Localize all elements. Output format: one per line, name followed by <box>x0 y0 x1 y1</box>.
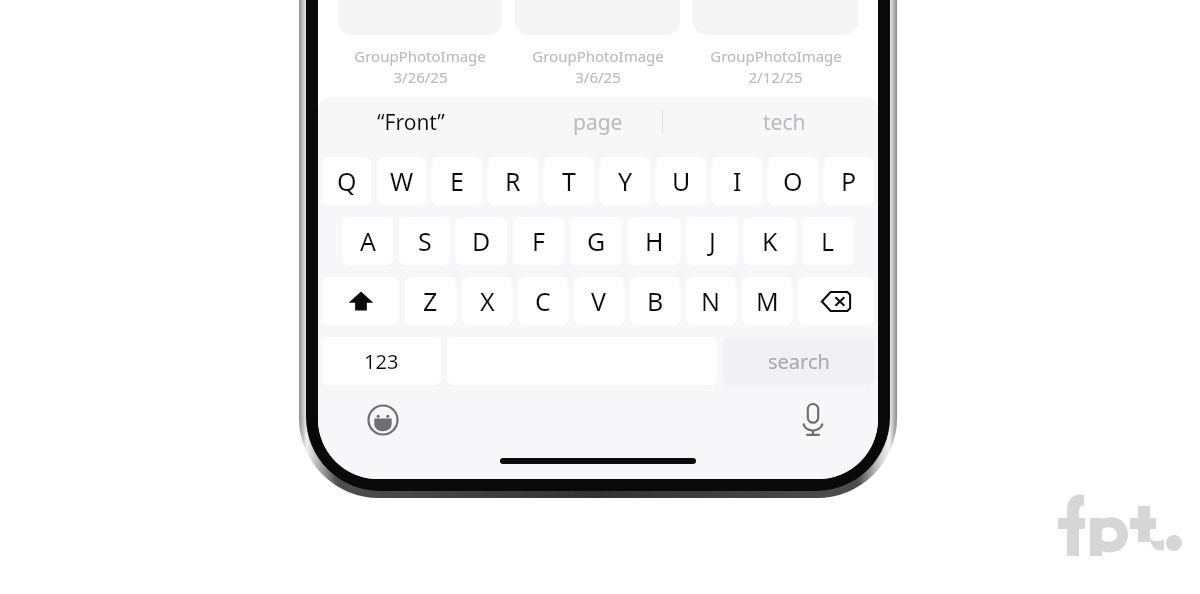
staticText: tech <box>763 108 806 137</box>
button[interactable]: A <box>342 217 393 265</box>
staticText: S <box>418 224 432 258</box>
staticText: K <box>762 224 778 258</box>
staticText: 2/12/25 <box>748 67 803 87</box>
staticText: P <box>841 164 857 198</box>
staticText: 3/26/25 <box>393 67 448 87</box>
button[interactable]: 123 <box>322 337 441 385</box>
staticText: X <box>480 284 495 318</box>
button[interactable]: U <box>656 157 706 205</box>
button[interactable]: Emoji <box>362 399 404 441</box>
button[interactable]: W <box>377 157 426 205</box>
staticText: Search <box>529 120 586 145</box>
staticText: F <box>532 224 545 258</box>
button[interactable]: T <box>544 157 594 205</box>
button[interactable] <box>515 131 680 241</box>
button[interactable] <box>693 131 858 241</box>
staticText: 123 <box>364 348 399 375</box>
staticText: E <box>450 164 464 198</box>
button[interactable] <box>338 131 502 241</box>
button[interactable]: X <box>462 277 512 325</box>
staticText: R <box>505 164 521 198</box>
staticText: GroupPhotoImage <box>354 46 486 66</box>
button[interactable]: J <box>686 217 738 265</box>
staticText: H <box>645 224 664 258</box>
button[interactable]: Search <box>471 109 725 155</box>
staticText: Q <box>337 164 357 198</box>
button[interactable]: E <box>432 157 482 205</box>
button[interactable]: Y <box>600 157 650 205</box>
staticText: page <box>573 108 623 137</box>
button[interactable]: Dictation <box>792 399 834 441</box>
staticText: Z <box>423 284 438 318</box>
staticText: GroupPhotoImage <box>532 46 664 66</box>
staticText: G <box>587 224 606 258</box>
staticText: 3/6/25 <box>575 67 621 87</box>
button[interactable]: N <box>686 277 736 325</box>
button[interactable]: Backspace <box>798 277 874 325</box>
staticText: T <box>562 164 576 198</box>
staticText: J <box>709 224 716 258</box>
button[interactable]: K <box>744 217 796 265</box>
button[interactable]: H <box>628 217 680 265</box>
button[interactable]: B <box>630 277 680 325</box>
staticText: W <box>390 164 414 198</box>
button[interactable]: Q <box>322 157 371 205</box>
button[interactable]: Shift <box>322 277 399 325</box>
staticText: U <box>672 164 691 198</box>
button[interactable]: R <box>488 157 538 205</box>
button[interactable]: O <box>768 157 818 205</box>
button[interactable]: M <box>742 277 792 325</box>
button[interactable]: page <box>504 97 691 147</box>
staticText: V <box>591 284 607 318</box>
button[interactable]: F <box>513 217 564 265</box>
staticText: Y <box>618 164 633 198</box>
staticText: L <box>821 224 835 258</box>
button[interactable]: G <box>570 217 622 265</box>
staticText: C <box>535 284 551 318</box>
button[interactable]: D <box>456 217 507 265</box>
button[interactable]: search <box>723 337 874 385</box>
button[interactable]: “Front” <box>318 97 504 147</box>
button[interactable]: Z <box>405 277 456 325</box>
staticText: I <box>733 164 742 198</box>
staticText: “Front” <box>377 108 445 137</box>
button[interactable]: C <box>518 277 568 325</box>
button[interactable]: V <box>574 277 624 325</box>
staticText: N <box>701 284 721 318</box>
staticText: M <box>756 284 779 318</box>
staticText: O <box>783 164 803 198</box>
button[interactable]: P <box>824 157 874 205</box>
button[interactable]: L <box>802 217 854 265</box>
staticText: A <box>360 224 376 258</box>
staticText: B <box>647 284 664 318</box>
staticText: GroupPhotoImage <box>710 46 842 66</box>
button[interactable]: I <box>712 157 762 205</box>
staticText: search <box>768 348 830 375</box>
staticText: D <box>472 224 491 258</box>
button[interactable]: tech <box>691 97 878 147</box>
button[interactable]: S <box>399 217 450 265</box>
